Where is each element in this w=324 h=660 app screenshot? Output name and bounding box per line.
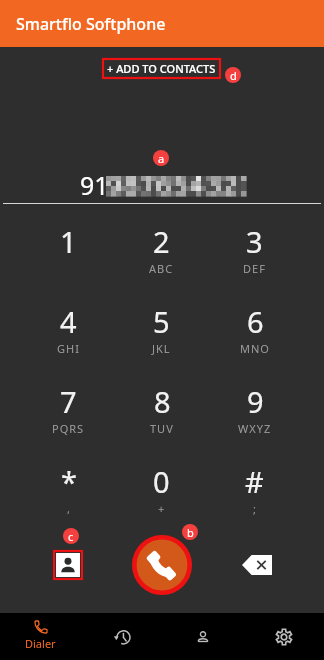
staticText: c [68, 529, 74, 544]
staticText: WXYZ [238, 421, 272, 436]
staticText: Dialer [25, 636, 56, 651]
staticText: 3 [246, 222, 263, 261]
button[interactable]: 1 [22, 222, 115, 302]
button[interactable]: 0 [115, 462, 208, 542]
button[interactable]: Backspace [242, 555, 272, 575]
button[interactable]: 8 [115, 382, 208, 462]
staticText: DEF [243, 261, 266, 276]
button[interactable]: 5 [115, 302, 208, 382]
staticText: 4 [60, 302, 77, 341]
staticText: 1 [60, 222, 77, 261]
button[interactable]: History [81, 613, 162, 660]
staticText: MNO [240, 341, 270, 356]
staticText: 8 [154, 382, 171, 421]
staticText: 0 [153, 462, 170, 501]
staticText: GHI [57, 341, 80, 356]
button[interactable]: Settings [243, 613, 324, 660]
button[interactable]: Smartflo Softphone [0, 0, 324, 47]
staticText: , [67, 501, 71, 516]
button[interactable]: 3 [208, 222, 301, 302]
button[interactable]: Call [133, 536, 191, 594]
button[interactable]: # [208, 462, 301, 542]
staticText: * [61, 462, 77, 501]
staticText: ABC [149, 261, 174, 276]
staticText: ; [253, 501, 257, 516]
staticText: a [158, 151, 165, 166]
staticText: 5 [153, 302, 170, 341]
staticText: Smartflo Softphone [16, 13, 166, 35]
staticText: 7 [60, 382, 77, 421]
staticText: # [245, 462, 264, 501]
button[interactable]: 4 [22, 302, 115, 382]
staticText: JKL [152, 341, 171, 356]
staticText: 6 [247, 302, 264, 341]
staticText: + [158, 501, 166, 516]
button[interactable]: 6 [208, 302, 301, 382]
button[interactable]: Contacts [162, 613, 243, 660]
staticText: PQRS [52, 421, 85, 436]
staticText: b [187, 525, 194, 540]
staticText: 2 [153, 222, 170, 261]
button[interactable]: 2 [115, 222, 208, 302]
button[interactable]: + ADD TO CONTACTS [104, 59, 219, 78]
button[interactable]: Dialer [0, 613, 81, 660]
staticText: 9 [247, 382, 264, 421]
staticText: TUV [150, 421, 174, 436]
button[interactable]: * [22, 462, 115, 542]
button[interactable]: 7 [22, 382, 115, 462]
button[interactable]: Contacts [56, 553, 80, 577]
staticText: d [230, 68, 237, 83]
staticText: + ADD TO CONTACTS [107, 61, 216, 76]
staticText: 91 [80, 168, 109, 202]
button[interactable]: 9 [208, 382, 301, 462]
